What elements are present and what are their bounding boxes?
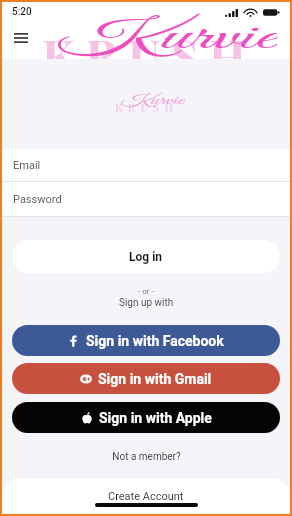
staticText: Password (13, 193, 62, 206)
button[interactable]: Sign in with Apple (12, 402, 280, 433)
button[interactable]: Menu (8, 25, 34, 51)
button[interactable]: Sign in with Gmail (12, 363, 280, 394)
staticText: Email (13, 159, 41, 172)
staticText: Sign in with Apple (99, 410, 212, 426)
staticText: Sign up with (119, 297, 174, 309)
staticText: Kurvie (56, 13, 277, 59)
staticText: - or - (138, 287, 154, 296)
staticText: Sign in with Gmail (98, 371, 212, 387)
button[interactable]: Sign in with Facebook (12, 325, 280, 356)
button[interactable]: Create Account (108, 490, 184, 503)
button[interactable]: Log in (12, 240, 280, 273)
staticText: Create Account (108, 490, 184, 503)
staticText: Not a member? (112, 451, 181, 463)
staticText: KRUSH (42, 24, 257, 59)
staticText: KRUSH (115, 100, 179, 115)
staticText: 5:20 (12, 6, 32, 18)
button[interactable]: Password (2, 182, 290, 216)
staticText: Sign in with Facebook (86, 333, 224, 349)
staticText: Log in (129, 250, 163, 264)
button[interactable]: Email (2, 149, 290, 181)
staticText: Kurvie (121, 92, 184, 110)
